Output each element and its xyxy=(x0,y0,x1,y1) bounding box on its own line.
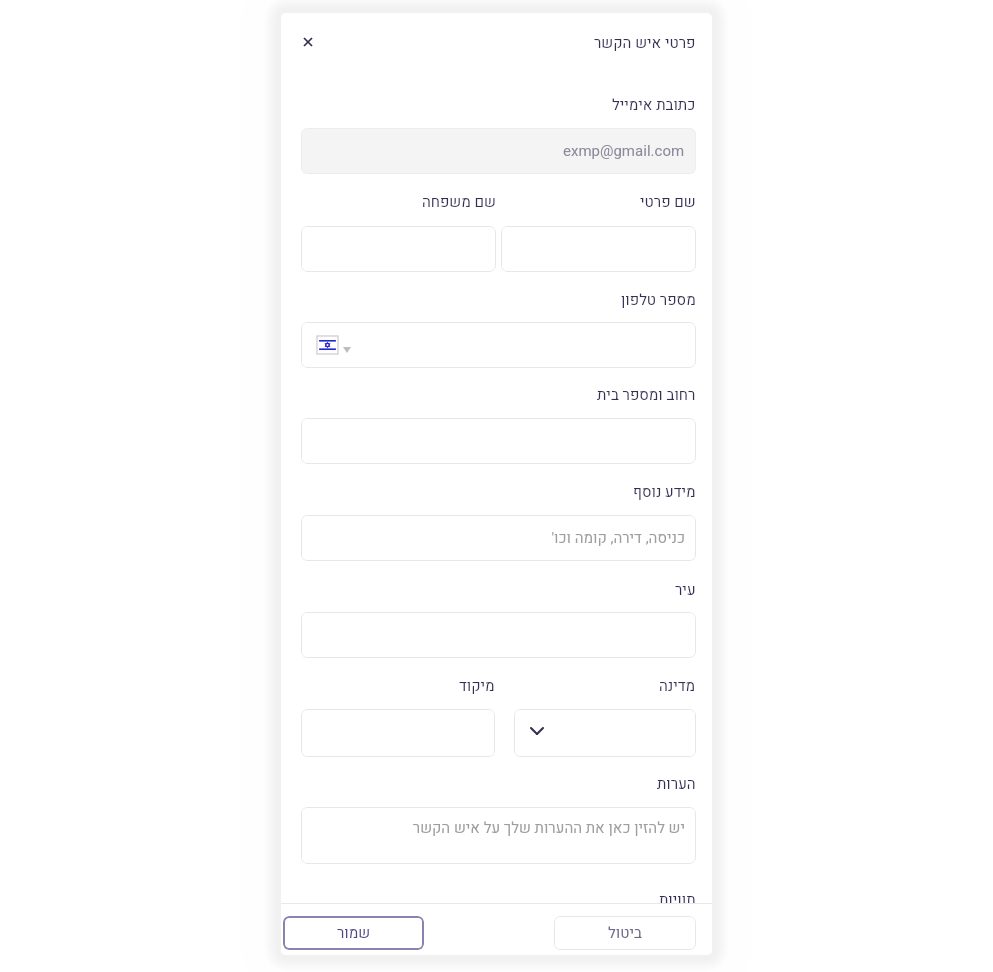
button[interactable]: ביטול xyxy=(554,916,696,950)
button[interactable]: עיר xyxy=(301,612,696,658)
button[interactable]: מדינה xyxy=(514,709,696,757)
staticText: ביטול xyxy=(608,922,642,944)
button[interactable]: מספר טלפון xyxy=(301,322,696,368)
staticText: מיקוד xyxy=(459,675,495,697)
button[interactable]: כניסה, דירה, קומה וכו' xyxy=(301,515,696,561)
staticText: פרטי איש הקשר xyxy=(594,32,696,54)
button[interactable]: שמור xyxy=(283,916,424,950)
staticText: כניסה, דירה, קומה וכו' xyxy=(551,527,685,549)
button[interactable]: Close xyxy=(294,28,321,55)
staticText: כתובת אימייל xyxy=(612,94,696,116)
staticText: exmp@gmail.com xyxy=(563,140,685,162)
staticText: שם משפחה xyxy=(422,191,496,213)
button[interactable]: יש להזין כאן את ההערות שלך על איש הקשר xyxy=(301,807,696,864)
staticText: עיר xyxy=(675,579,696,601)
staticText: הערות xyxy=(657,773,696,795)
staticText: שם פרטי xyxy=(640,191,696,213)
staticText: רחוב ומספר בית xyxy=(597,384,696,406)
staticText: מספר טלפון xyxy=(621,289,696,311)
staticText: יש להזין כאן את ההערות שלך על איש הקשר xyxy=(412,817,685,839)
button[interactable]: רחוב ומספר בית xyxy=(301,418,696,464)
staticText: תוויות xyxy=(659,889,696,911)
staticText: מידע נוסף xyxy=(633,481,696,503)
staticText: מדינה xyxy=(659,675,696,697)
button[interactable]: כתובת אימייל xyxy=(301,128,696,174)
button[interactable]: מיקוד xyxy=(301,709,495,757)
button[interactable]: שם פרטי xyxy=(501,226,696,272)
staticText: שמור xyxy=(337,922,371,944)
button[interactable]: שם משפחה xyxy=(301,226,496,272)
